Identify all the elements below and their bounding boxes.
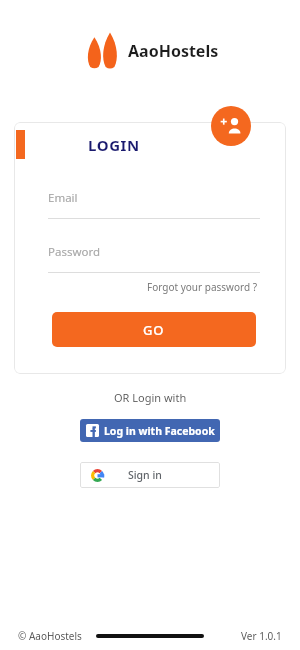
button[interactable]: Sign up / Add account <box>211 106 251 146</box>
button[interactable]: Forgot your password ? <box>145 278 260 296</box>
staticText: OR Login with <box>114 390 187 405</box>
button[interactable]: Email <box>48 190 260 219</box>
button[interactable]: Password <box>48 244 260 273</box>
staticText: Password <box>48 244 101 260</box>
staticText: Sign in <box>128 468 162 482</box>
staticText: Log in with Facebook <box>104 424 215 438</box>
button[interactable]: Sign in <box>80 462 220 488</box>
staticText: Ver 1.0.1 <box>241 629 282 643</box>
staticText: © AaoHostels <box>18 629 82 643</box>
staticText: GO <box>143 321 165 339</box>
button[interactable]: GO <box>52 312 256 347</box>
button[interactable]: Log in with Facebook <box>80 419 220 442</box>
staticText: Email <box>48 190 78 206</box>
staticText: LOGIN <box>88 135 140 155</box>
staticText: AaoHostels <box>128 40 219 62</box>
